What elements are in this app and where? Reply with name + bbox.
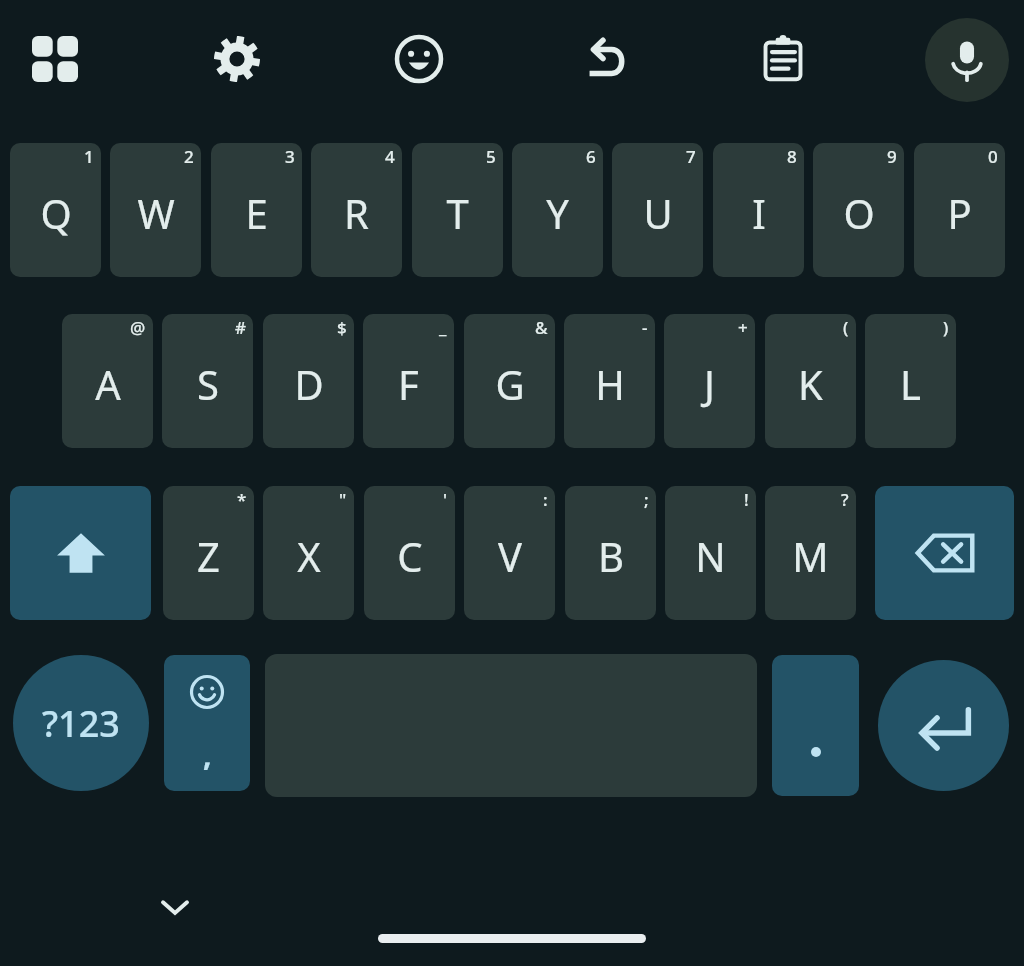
staticText: 4: [385, 145, 395, 168]
staticText: !: [744, 488, 749, 511]
button[interactable]: Backspace: [875, 486, 1014, 620]
button[interactable]: E: [211, 143, 302, 277]
staticText: @: [130, 316, 146, 339]
staticText: I: [752, 186, 766, 240]
staticText: O: [843, 186, 875, 240]
staticText: E: [245, 186, 268, 240]
button[interactable]: Settings: [200, 22, 274, 96]
button[interactable]: H: [564, 314, 655, 448]
button[interactable]: Clipboard: [746, 22, 820, 96]
staticText: Y: [546, 186, 569, 240]
button[interactable]: Emoji and comma: [164, 655, 250, 791]
staticText: (: [843, 316, 849, 339]
button[interactable]: K: [765, 314, 856, 448]
button[interactable]: Shift: [10, 486, 151, 620]
staticText: R: [344, 186, 369, 240]
staticText: U: [643, 186, 673, 240]
staticText: L: [900, 357, 921, 411]
button[interactable]: Emoji: [382, 22, 456, 96]
button[interactable]: R: [311, 143, 402, 277]
button[interactable]: O: [813, 143, 904, 277]
staticText: 0: [988, 145, 998, 168]
staticText: _: [439, 316, 447, 339]
button[interactable]: S: [162, 314, 253, 448]
staticText: ;: [644, 488, 649, 511]
button[interactable]: T: [412, 143, 503, 277]
button[interactable]: Apps: [18, 22, 92, 96]
staticText: P: [947, 186, 972, 240]
staticText: #: [235, 316, 246, 339]
button[interactable]: G: [464, 314, 555, 448]
button[interactable]: C: [364, 486, 455, 620]
staticText: ): [943, 316, 949, 339]
staticText: +: [738, 316, 748, 339]
button[interactable]: W: [110, 143, 201, 277]
staticText: Z: [197, 529, 220, 583]
button[interactable]: D: [263, 314, 354, 448]
button[interactable]: X: [263, 486, 354, 620]
staticText: ": [339, 488, 347, 511]
button[interactable]: B: [565, 486, 656, 620]
staticText: X: [297, 529, 321, 583]
staticText: J: [704, 357, 715, 411]
staticText: ?123: [42, 699, 120, 748]
staticText: B: [598, 529, 624, 583]
button[interactable]: Z: [163, 486, 254, 620]
staticText: T: [446, 186, 469, 240]
button[interactable]: V: [464, 486, 555, 620]
button[interactable]: Q: [10, 143, 101, 277]
button[interactable]: L: [865, 314, 956, 448]
staticText: 5: [486, 145, 496, 168]
staticText: ,: [203, 734, 212, 775]
button[interactable]: P: [914, 143, 1005, 277]
staticText: F: [398, 357, 419, 411]
staticText: -: [642, 316, 648, 339]
staticText: D: [294, 357, 324, 411]
staticText: 2: [184, 145, 194, 168]
button[interactable]: I: [713, 143, 804, 277]
staticText: 9: [887, 145, 897, 168]
button[interactable]: Voice input: [925, 18, 1009, 102]
staticText: 8: [787, 145, 797, 168]
staticText: *: [237, 488, 247, 511]
button[interactable]: Undo: [566, 22, 640, 96]
staticText: 3: [285, 145, 295, 168]
button[interactable]: Enter: [878, 660, 1009, 791]
staticText: Q: [40, 186, 72, 240]
staticText: H: [595, 357, 625, 411]
staticText: C: [397, 529, 423, 583]
staticText: ': [443, 488, 448, 511]
staticText: 7: [686, 145, 696, 168]
staticText: G: [495, 357, 525, 411]
staticText: W: [137, 186, 175, 240]
staticText: N: [695, 529, 726, 583]
staticText: A: [95, 357, 121, 411]
button[interactable]: M: [765, 486, 856, 620]
staticText: S: [197, 357, 219, 411]
button[interactable]: Period: [772, 655, 859, 796]
staticText: ?: [841, 488, 849, 511]
button[interactable]: F: [363, 314, 454, 448]
staticText: K: [798, 357, 823, 411]
staticText: 6: [586, 145, 596, 168]
button[interactable]: Y: [512, 143, 603, 277]
staticText: :: [543, 488, 548, 511]
button[interactable]: ?123: [13, 655, 149, 791]
staticText: 1: [84, 145, 94, 168]
staticText: &: [535, 316, 548, 339]
button[interactable]: J: [664, 314, 755, 448]
staticText: V: [498, 529, 522, 583]
button[interactable]: Hide keyboard: [143, 875, 207, 939]
button[interactable]: A: [62, 314, 153, 448]
button[interactable]: N: [665, 486, 756, 620]
button[interactable]: U: [612, 143, 703, 277]
staticText: M: [792, 529, 829, 583]
staticText: $: [337, 316, 347, 339]
